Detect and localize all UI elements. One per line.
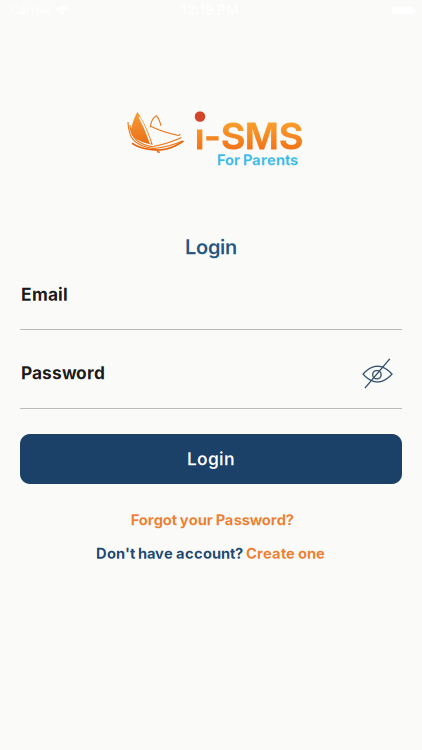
button[interactable]: Don't have account?: [96, 545, 325, 562]
staticText: Login: [187, 449, 235, 469]
staticText: Password: [21, 363, 105, 383]
staticText: Email: [21, 284, 68, 305]
staticText: Forgot your Password?: [131, 511, 294, 529]
staticText: Don't have account?: [96, 545, 243, 562]
staticText: For Parents: [217, 151, 298, 169]
button[interactable]: [354, 351, 398, 395]
button[interactable]: Forgot your Password?: [131, 511, 294, 529]
button[interactable]: Login: [20, 434, 402, 484]
staticText: Login: [185, 235, 237, 259]
staticText: Create one: [246, 545, 325, 562]
